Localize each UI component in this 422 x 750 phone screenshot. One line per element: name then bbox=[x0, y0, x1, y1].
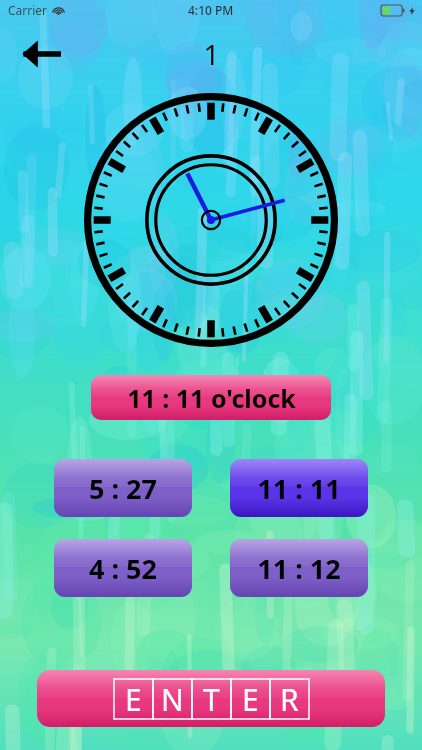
button[interactable]: E bbox=[37, 670, 385, 727]
staticText: E bbox=[125, 679, 142, 719]
staticText: 11 : 11 o'clock bbox=[127, 381, 296, 415]
staticText: E bbox=[242, 679, 259, 719]
staticText: 5 : 27 bbox=[89, 470, 157, 507]
staticText: 4:10 PM bbox=[188, 2, 234, 18]
staticText: R bbox=[280, 679, 299, 719]
staticText: N bbox=[161, 679, 184, 719]
button[interactable]: 4 : 52 bbox=[54, 539, 192, 597]
button[interactable]: 11 : 11 o'clock bbox=[91, 375, 331, 420]
button[interactable]: 11 : 12 bbox=[230, 539, 368, 597]
button[interactable]: 11 : 11 bbox=[230, 459, 368, 517]
staticText: 11 : 12 bbox=[257, 550, 341, 587]
staticText: 4 : 52 bbox=[89, 550, 157, 587]
button[interactable]: 5 : 27 bbox=[54, 459, 192, 517]
staticText: 11 : 11 bbox=[257, 470, 341, 507]
button[interactable]: Back bbox=[14, 27, 68, 81]
staticText: Carrier bbox=[8, 2, 48, 18]
staticText: T bbox=[203, 679, 220, 719]
staticText: 1 bbox=[203, 35, 220, 73]
